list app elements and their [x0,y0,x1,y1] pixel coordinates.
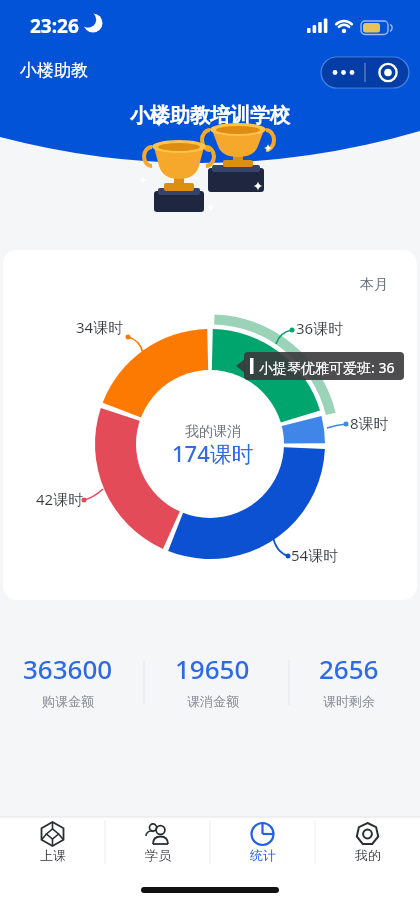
staticText: 19650 [175,651,250,686]
staticText: 8课时 [350,413,389,433]
staticText: 我的课消 [185,423,241,441]
button[interactable] [315,818,420,866]
staticText: 174课时 [172,438,254,468]
staticText: 36课时 [296,318,344,338]
staticText: 上课 [40,847,66,863]
staticText: 34课时 [76,317,124,337]
button[interactable] [322,57,408,88]
staticText: 小楼助教培训学校 [130,103,290,128]
button[interactable] [3,250,417,600]
button[interactable]: 19650 [175,651,250,709]
staticText: 本月 [360,276,388,294]
staticText: 我的 [355,847,381,863]
staticText: 课时剩余 [323,693,375,709]
staticText: 统计 [250,847,276,863]
staticText: 54课时 [291,545,339,565]
staticText: 课消金额 [187,693,239,709]
staticText: 23:26 [30,13,79,39]
button[interactable]: 363600 [23,651,113,709]
button[interactable] [210,818,315,866]
staticText: 42课时 [36,489,84,509]
staticText: 小楼助教 [20,60,88,81]
staticText: 学员 [145,847,171,863]
button[interactable] [105,818,210,866]
staticText: 2656 [319,651,379,686]
staticText: 小提琴优雅可爱班: 36 [259,358,395,377]
button[interactable]: 2656 [319,651,379,709]
button[interactable] [0,818,105,866]
staticText: 购课金额 [42,693,94,709]
staticText: 363600 [23,651,113,686]
